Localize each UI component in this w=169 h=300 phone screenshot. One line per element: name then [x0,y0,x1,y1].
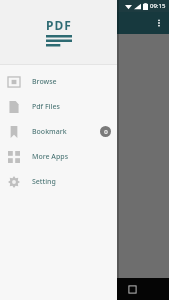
staticText: Setting [32,177,56,187]
staticText: More Apps [32,152,69,162]
staticText: 09:15 [150,2,166,10]
staticText: PDF [46,17,72,33]
staticText: Pdf Files [32,102,60,112]
button[interactable]: Recents [122,279,142,299]
button[interactable]: Setting [0,169,117,194]
button[interactable]: Bookmark [0,119,117,144]
button[interactable]: Browse [0,69,117,94]
staticText: Browse [32,77,57,87]
staticText: Bookmark [32,127,67,137]
button[interactable]: More options [149,13,169,33]
button[interactable]: More Apps [0,144,117,169]
staticText: 0 [104,128,108,136]
button[interactable]: Pdf Files [0,94,117,119]
